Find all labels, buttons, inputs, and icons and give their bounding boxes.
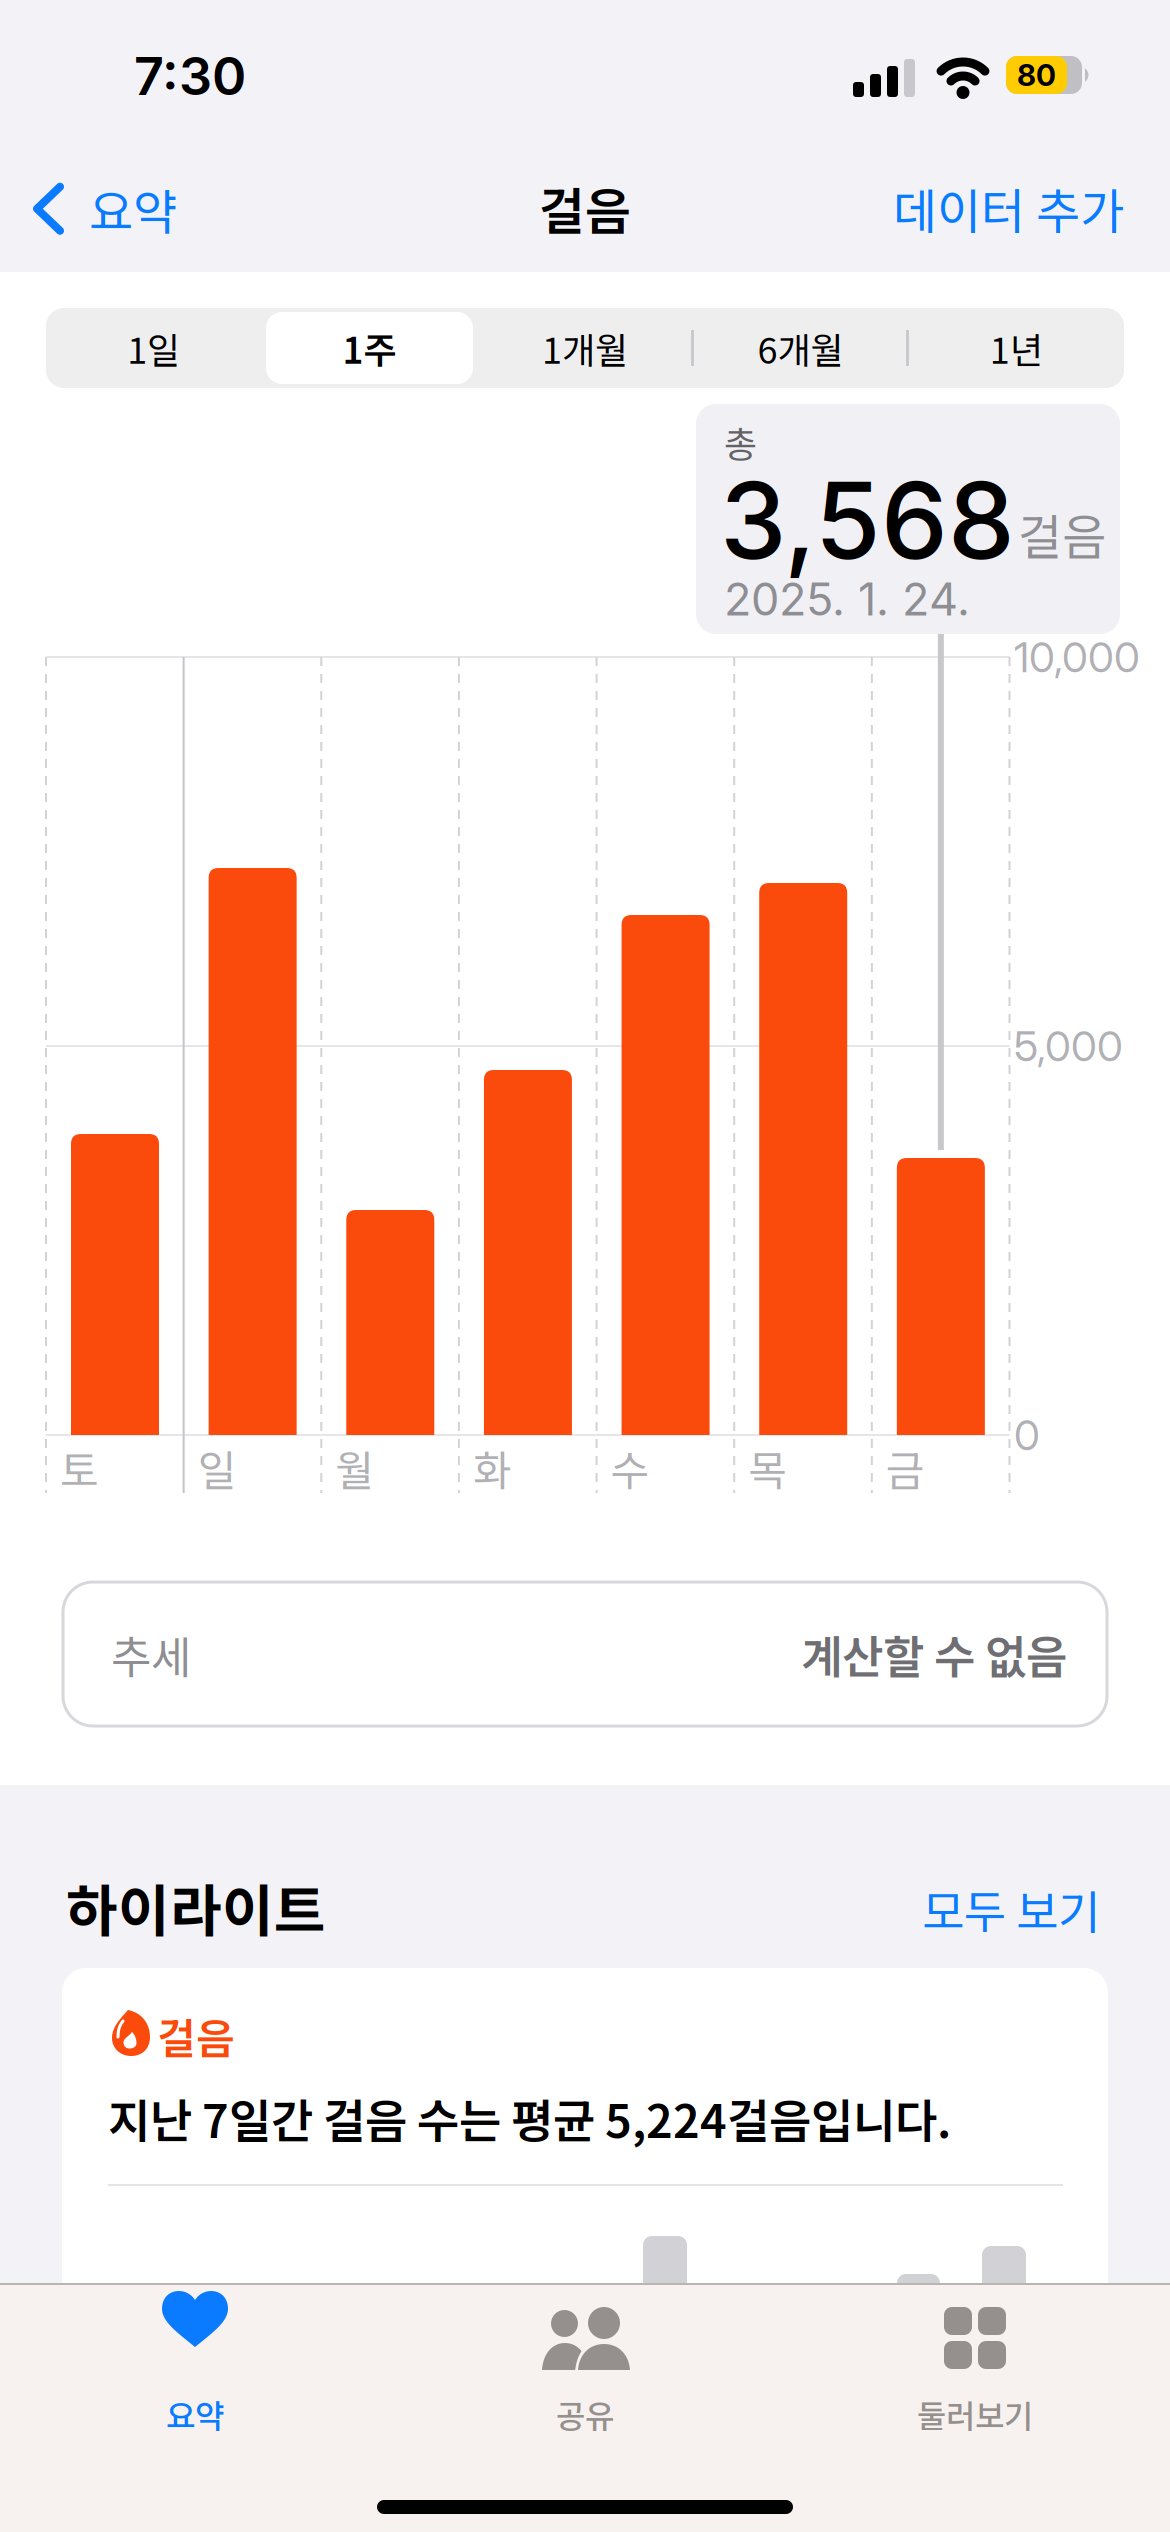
button[interactable]: 1년 (908, 308, 1124, 388)
button[interactable]: 요약 (32, 174, 177, 243)
button[interactable]: 모두 보기 (922, 1876, 1100, 1942)
button[interactable]: 데이터 추가 (893, 173, 1124, 243)
staticText: 공유 (556, 2391, 614, 2437)
staticText: 계산할 수 없음 (801, 1621, 1067, 1687)
staticText: 금 (886, 1438, 925, 1498)
staticText: 걸음 (1018, 499, 1106, 568)
staticText: 80 (1017, 57, 1056, 93)
staticText: 6개월 (758, 322, 844, 374)
staticText: 모두 보기 (922, 1876, 1100, 1942)
staticText: 1년 (990, 322, 1043, 374)
button[interactable]: 1주 (262, 308, 477, 388)
staticText: 월 (335, 1438, 374, 1498)
staticText: 5,000 (1014, 1021, 1123, 1071)
staticText: 요약 (89, 174, 177, 243)
staticText: 지난 7일간 걸음 수는 평균 5,224걸음입니다. (108, 2085, 951, 2151)
staticText: 1개월 (542, 322, 628, 374)
staticText: 요약 (166, 2391, 224, 2437)
staticText: 3,568 (720, 456, 1015, 584)
staticText: 수 (611, 1438, 650, 1498)
staticText: 추세 (111, 1622, 191, 1686)
staticText: 10,000 (1014, 632, 1140, 682)
staticText: 총 (724, 416, 757, 468)
staticText: 토 (60, 1438, 99, 1498)
staticText: 0 (1014, 1410, 1040, 1460)
staticText: 일 (198, 1438, 237, 1498)
staticText: 하이라이트 (66, 1866, 326, 1948)
button[interactable]: 걸음 (62, 1968, 1108, 2328)
button[interactable]: 공유 (435, 2291, 735, 2456)
button[interactable]: 둘러보기 (825, 2291, 1125, 2456)
button[interactable]: 1일 (46, 308, 262, 388)
staticText: 1주 (342, 322, 396, 374)
button[interactable]: 1개월 (477, 308, 693, 388)
button[interactable]: 6개월 (693, 308, 908, 388)
staticText: 7:30 (134, 44, 246, 107)
staticText: 화 (473, 1438, 512, 1498)
staticText: 걸음 (157, 2006, 235, 2066)
staticText: 1일 (127, 322, 180, 374)
staticText: 2025. 1. 24. (724, 572, 970, 626)
button[interactable]: 요약 (45, 2291, 345, 2456)
staticText: 목 (748, 1438, 787, 1498)
staticText: 둘러보기 (917, 2391, 1033, 2437)
staticText: 데이터 추가 (893, 173, 1124, 243)
staticText: 걸음 (539, 172, 631, 244)
